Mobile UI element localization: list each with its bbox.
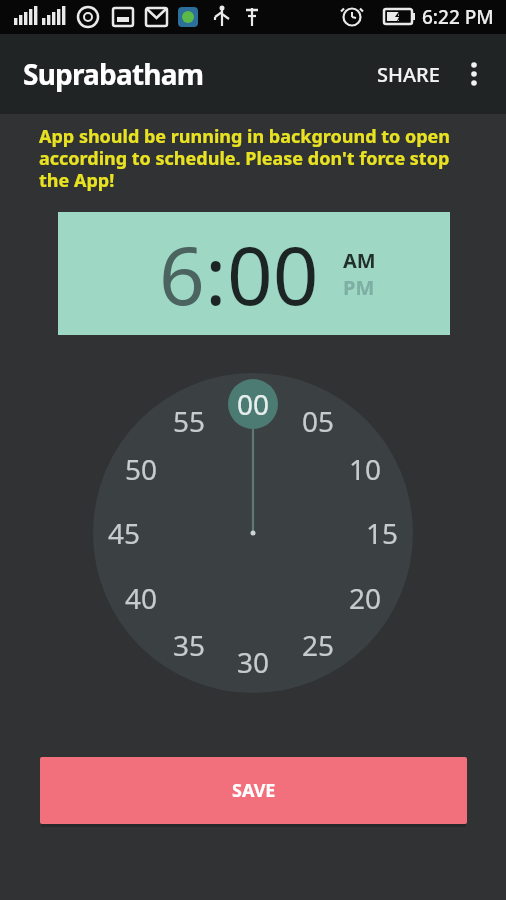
staticText: 00 <box>237 385 270 423</box>
staticText: 40 <box>125 579 158 617</box>
button[interactable]: 6 <box>159 219 205 328</box>
staticText: 20 <box>349 579 382 617</box>
staticText: 30 <box>237 643 270 681</box>
staticText: 6 <box>159 219 205 328</box>
staticText: App should be running in background to o… <box>39 124 451 193</box>
button[interactable]: 25 <box>288 625 348 665</box>
staticText: 00 <box>227 219 319 328</box>
button[interactable]: PM <box>343 274 375 301</box>
staticText: 25 <box>302 626 335 664</box>
button[interactable]: 00 <box>223 384 283 424</box>
button[interactable]: SHARE <box>367 51 450 98</box>
staticText: 15 <box>366 514 399 552</box>
staticText: 05 <box>302 402 335 440</box>
button[interactable]: 50 <box>111 449 171 489</box>
staticText: AM <box>343 247 376 274</box>
staticText: 6:22 PM <box>422 4 494 30</box>
staticText: 35 <box>173 626 206 664</box>
staticText: SAVE <box>232 778 276 803</box>
button[interactable]: 15 <box>352 513 412 553</box>
button[interactable]: 20 <box>335 578 395 618</box>
button[interactable]: 05 <box>288 401 348 441</box>
staticText: : <box>205 219 227 328</box>
button[interactable]: 45 <box>94 513 154 553</box>
button[interactable]: 30 <box>223 642 283 682</box>
button[interactable] <box>450 50 498 98</box>
staticText: 55 <box>173 402 206 440</box>
staticText: 10 <box>349 450 382 488</box>
button[interactable]: 55 <box>159 401 219 441</box>
button[interactable]: 35 <box>159 625 219 665</box>
button[interactable]: 10 <box>335 449 395 489</box>
staticText: 45 <box>108 514 141 552</box>
button[interactable]: SAVE <box>40 757 467 824</box>
staticText: PM <box>343 274 375 301</box>
staticText: 50 <box>125 450 158 488</box>
button[interactable]: 40 <box>111 578 171 618</box>
button[interactable]: AM <box>343 247 376 274</box>
staticText: SHARE <box>377 61 440 88</box>
staticText: Suprabatham <box>23 55 204 93</box>
button[interactable]: 00 <box>227 219 319 328</box>
